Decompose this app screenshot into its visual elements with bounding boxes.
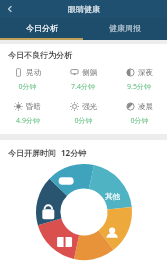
staticText: 4.9分钟: [16, 116, 40, 126]
staticText: 今日开屏时间: [8, 148, 56, 158]
staticText: 强光: [82, 102, 97, 111]
button[interactable]: 侧躺: [55, 68, 111, 92]
staticText: 今日分析: [26, 23, 58, 33]
staticText: 昏暗: [26, 102, 41, 111]
staticText: 侧躺: [82, 68, 97, 77]
button[interactable]: 晃动: [0, 68, 55, 92]
staticText: 凌晨: [138, 102, 153, 111]
staticText: 深夜: [138, 68, 153, 77]
staticText: 0分钟: [74, 116, 93, 126]
staticText: 9.5分钟: [127, 82, 151, 92]
button[interactable]: 深夜: [111, 68, 167, 92]
button[interactable]: 凌晨: [111, 102, 167, 126]
staticText: 其他: [105, 192, 120, 201]
staticText: 今日不良行为分析: [8, 50, 72, 60]
staticText: 0分钟: [130, 116, 149, 126]
button[interactable]: 今日分析: [0, 18, 83, 38]
button[interactable]: 强光: [55, 102, 111, 126]
button[interactable]: Screen time breakdown: [36, 164, 132, 260]
button[interactable]: 健康周报: [83, 18, 167, 38]
staticText: 健康周报: [109, 23, 141, 33]
button[interactable]: Back: [2, 1, 18, 17]
staticText: 眼睛健康: [68, 4, 100, 14]
button[interactable]: 昏暗: [0, 102, 55, 126]
staticText: 晃动: [26, 68, 41, 77]
staticText: 0分钟: [18, 82, 37, 92]
staticText: 7.4分钟: [71, 82, 95, 92]
staticText: 12分钟: [61, 147, 87, 158]
